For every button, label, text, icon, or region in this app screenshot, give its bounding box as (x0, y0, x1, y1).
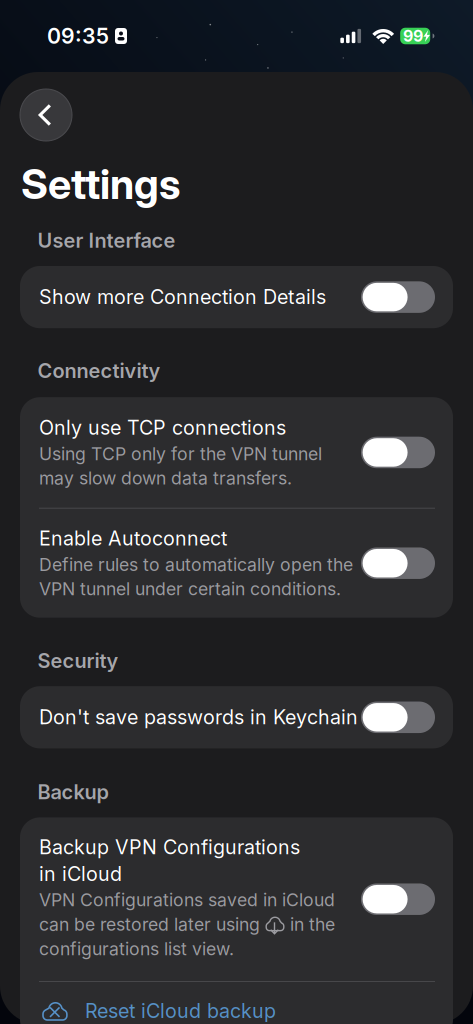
staticText: Reset iCloud backup (85, 999, 276, 1023)
staticText: Only use TCP connections (39, 416, 286, 439)
staticText: Don't save passwords in Keychain (39, 705, 358, 729)
button[interactable]: Backup VPN Configurations (20, 817, 453, 981)
staticText: Enable Autoconnect (39, 526, 227, 550)
button[interactable]: Reset iCloud backup (20, 982, 453, 1024)
staticText: in the (290, 914, 335, 935)
button[interactable]: Enable Autoconnect (20, 509, 453, 618)
staticText: Show more Connection Details (39, 285, 326, 309)
staticText: may slow down data transfers. (39, 467, 292, 489)
staticText: 09:35 (47, 23, 109, 49)
staticText: 99 (403, 26, 423, 46)
staticText: Using TCP only for the VPN tunnel (39, 443, 322, 464)
staticText: VPN Configurations saved in iCloud (39, 889, 335, 911)
button[interactable]: Back (20, 89, 72, 141)
staticText: User Interface (37, 228, 175, 253)
staticText: Backup (37, 780, 108, 804)
staticText: Settings (21, 159, 180, 209)
staticText: in iCloud (39, 862, 122, 886)
button[interactable]: Don't save passwords in Keychain (20, 686, 453, 748)
staticText: VPN tunnel under certain conditions. (39, 578, 341, 600)
button[interactable]: Only use TCP connections (20, 397, 453, 508)
staticText: Define rules to automatically open the (39, 554, 353, 575)
staticText: can be restored later using (39, 914, 260, 935)
staticText: Security (37, 649, 118, 673)
staticText: Backup VPN Configurations (39, 835, 300, 859)
staticText: configurations list view. (39, 938, 234, 959)
button[interactable]: Show more Connection Details (20, 266, 453, 328)
staticText: Connectivity (37, 359, 160, 383)
